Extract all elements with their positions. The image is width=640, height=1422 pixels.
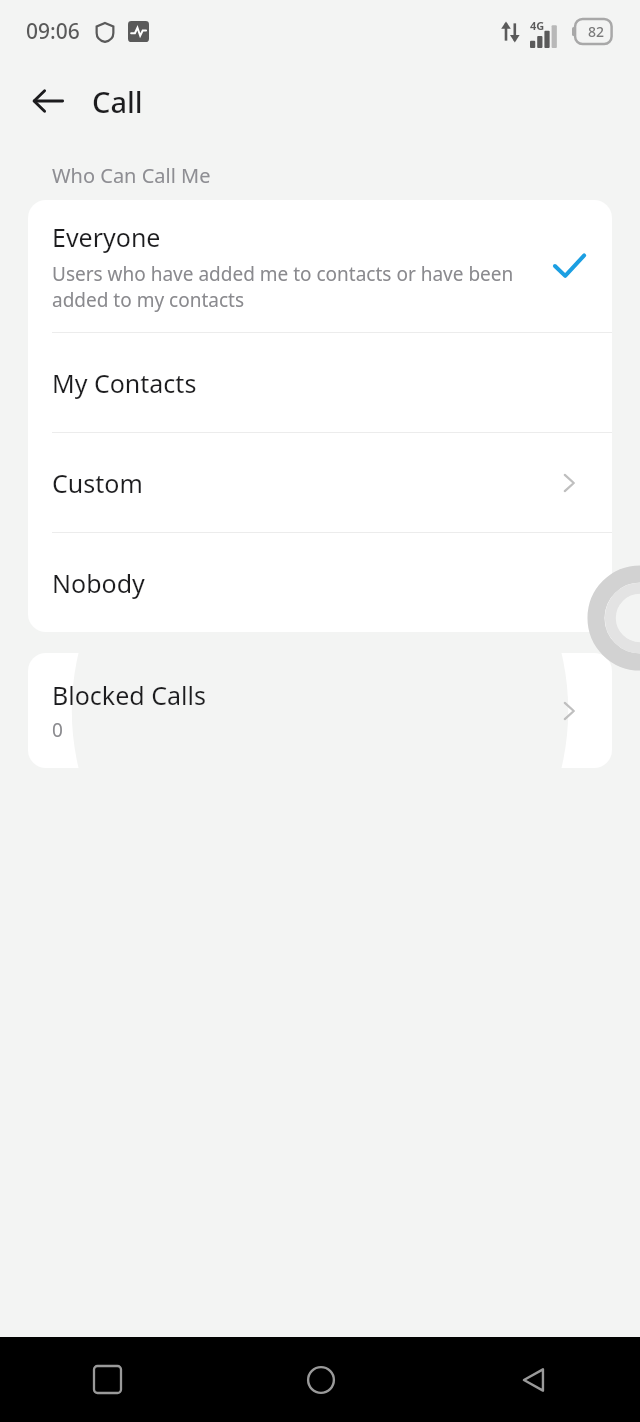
button[interactable]: Custom: [28, 433, 612, 532]
staticText: 09:06: [26, 17, 80, 46]
button[interactable]: My Contacts: [28, 333, 612, 432]
button[interactable]: Back: [22, 75, 74, 127]
staticText: Nobody: [52, 566, 584, 600]
staticText: Who Can Call Me: [52, 162, 211, 189]
button[interactable]: Everyone: [28, 200, 612, 332]
button[interactable]: Blocked Calls: [28, 653, 612, 768]
staticText: 4G: [530, 18, 545, 33]
staticText: Users who have added me to contacts or h…: [52, 261, 536, 313]
button[interactable]: Nobody: [28, 533, 612, 632]
staticText: 0: [52, 717, 63, 743]
button[interactable]: Recent apps: [0, 1337, 214, 1422]
staticText: My Contacts: [52, 366, 584, 400]
staticText: Custom: [52, 466, 554, 500]
button[interactable]: Back: [427, 1337, 640, 1422]
staticText: Everyone: [52, 220, 161, 254]
staticText: Call: [92, 82, 143, 121]
staticText: 82: [588, 22, 605, 41]
staticText: Blocked Calls: [52, 678, 206, 712]
button[interactable]: Home: [214, 1337, 427, 1422]
